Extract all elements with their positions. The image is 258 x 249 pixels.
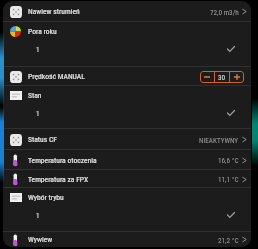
other: Open xyxy=(242,135,247,144)
button[interactable]: Prędkość MANUAL xyxy=(3,67,251,86)
staticText: 1 xyxy=(36,45,40,53)
staticText: 30 xyxy=(218,73,226,81)
staticText: 72,0 m3/h xyxy=(210,8,239,16)
button[interactable]: Temperatura otoczenia xyxy=(3,150,251,170)
staticText: 16,6 °C xyxy=(218,156,239,164)
button[interactable]: Stan xyxy=(3,86,251,129)
staticText: 1 xyxy=(36,211,40,219)
button[interactable]: Nawiew strumień xyxy=(3,1,251,22)
staticText: Wywiew xyxy=(28,235,53,244)
button[interactable]: Increase xyxy=(230,71,244,83)
button[interactable]: Wywiew xyxy=(3,232,251,247)
staticText: 1 xyxy=(36,109,40,117)
button[interactable]: Pora roku xyxy=(3,22,251,67)
button[interactable]: Status CF xyxy=(3,129,251,150)
staticText: 21,2 °C xyxy=(218,236,239,244)
staticText: Wybór trybu xyxy=(28,193,64,202)
staticText: Status CF xyxy=(28,135,57,144)
other: Open xyxy=(242,175,247,184)
staticText: Stan xyxy=(28,91,42,100)
staticText: NIEAKTYWNY xyxy=(199,136,239,144)
staticText: 11,1 °C xyxy=(218,175,239,183)
button[interactable]: Temperatura za FPX xyxy=(3,170,251,188)
other: Open xyxy=(242,7,247,16)
staticText: Temperatura otoczenia xyxy=(28,156,97,165)
button[interactable]: Wybór trybu xyxy=(3,188,251,232)
staticText: Nawiew strumień xyxy=(28,7,80,16)
button[interactable]: Decrease xyxy=(200,71,214,83)
staticText: Temperatura za FPX xyxy=(28,175,89,184)
other: Open xyxy=(242,235,247,244)
staticText: Pora roku xyxy=(28,27,57,36)
other: Open xyxy=(242,156,247,165)
staticText: Prędkość MANUAL xyxy=(28,72,85,81)
